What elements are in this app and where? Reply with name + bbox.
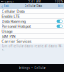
button[interactable]: Personal Hotspot [0, 24, 64, 29]
staticText: Back [3, 4, 8, 8]
staticText: Data Roaming [2, 19, 26, 24]
staticText: Cellular Data [25, 4, 42, 8]
staticText: Cellular Data [2, 9, 25, 14]
staticText: Turn off cellular data to restrict all d… [2, 44, 63, 51]
staticText: 9:41 AM [28, 0, 40, 3]
button[interactable]: Data Roaming [0, 19, 64, 24]
staticText: Personal Hotspot [2, 24, 31, 29]
button[interactable]: Enable LTE [0, 14, 64, 19]
staticText: ‹ [1, 2, 3, 10]
staticText: Settings • Cellular [18, 66, 45, 70]
staticText: 100% [55, 0, 63, 3]
staticText: Usage [2, 29, 13, 34]
staticText: SIM PIN [2, 34, 16, 39]
button[interactable]: Carrier Services [0, 39, 64, 44]
button[interactable]: Edit [58, 4, 64, 8]
button[interactable]: SIM PIN [0, 34, 64, 39]
button[interactable]: Usage [0, 29, 64, 34]
staticText: Carrier [5, 0, 14, 3]
button[interactable]: Cellular Data [0, 9, 64, 14]
staticText: Enable LTE [2, 14, 20, 19]
staticText: Edit [58, 4, 63, 8]
button[interactable]: Back [0, 2, 8, 10]
staticText: Carrier Services [2, 39, 32, 44]
